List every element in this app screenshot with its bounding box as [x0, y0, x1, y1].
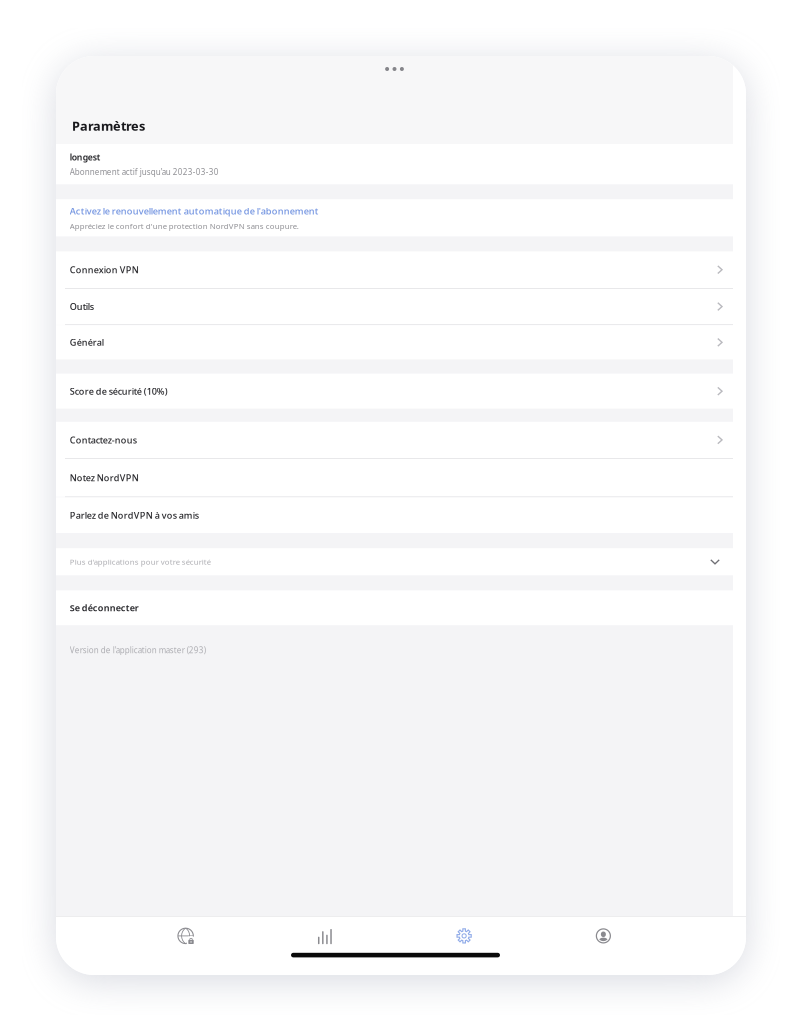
staticText: longest — [70, 151, 101, 163]
button[interactable]: Contactez-nous — [56, 422, 733, 458]
button[interactable]: longest — [56, 144, 733, 184]
staticText: Parlez de NordVPN à vos amis — [70, 509, 199, 521]
staticText: Score de sécurité (10%) — [70, 385, 168, 397]
staticText: Se déconnecter — [70, 602, 139, 614]
button[interactable]: Activez le renouvellement automatique de… — [56, 199, 733, 237]
button[interactable]: Statistiques — [255, 917, 394, 951]
staticText: Appréciez le confort d'une protection No… — [70, 221, 299, 231]
button[interactable]: Connexion VPN — [56, 251, 733, 288]
staticText: Activez le renouvellement automatique de… — [70, 205, 319, 217]
staticText: Version de l'application master (293) — [70, 645, 206, 656]
button[interactable]: Compte — [534, 917, 673, 951]
button[interactable]: Notez NordVPN — [56, 459, 733, 496]
staticText: Outils — [70, 300, 94, 313]
staticText: Paramètres — [72, 117, 145, 134]
button[interactable]: Général — [56, 325, 733, 360]
staticText: Plus d'applications pour votre sécurité — [70, 557, 211, 567]
staticText: Abonnement actif jusqu'au 2023-03-30 — [70, 166, 219, 177]
staticText: Général — [70, 336, 104, 348]
button[interactable]: Parlez de NordVPN à vos amis — [56, 497, 733, 533]
button[interactable]: Paramètres — [394, 917, 534, 951]
button[interactable]: Plus d'applications pour votre sécurité — [56, 548, 733, 575]
staticText: Notez NordVPN — [70, 471, 139, 484]
button[interactable]: VPN — [116, 917, 255, 951]
button[interactable]: Paramètres — [72, 117, 145, 134]
button[interactable]: Outils — [56, 289, 733, 324]
staticText: Connexion VPN — [70, 263, 139, 276]
staticText: Contactez-nous — [70, 434, 137, 446]
button[interactable]: Se déconnecter — [56, 590, 733, 625]
button[interactable]: Score de sécurité (10%) — [56, 374, 733, 409]
